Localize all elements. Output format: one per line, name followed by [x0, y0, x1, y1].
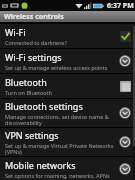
button[interactable]: Bluetooth: [0, 74, 135, 98]
button[interactable]: Open settings: [119, 163, 131, 175]
staticText: Manage connections, set device name & di…: [5, 113, 116, 127]
staticText: Wireless controls: [4, 12, 64, 22]
button[interactable]: Wi-Fi: [0, 24, 135, 48]
staticText: Wi-Fi settings: [5, 51, 62, 63]
staticText: Set up & manage Virtual Private Networks…: [5, 142, 116, 156]
staticText: Connected to darkness?: [5, 39, 67, 46]
button[interactable]: Open settings: [119, 107, 131, 119]
button[interactable]: Wi-Fi settings: [0, 49, 135, 73]
button[interactable]: Toggle off: [120, 81, 131, 92]
button[interactable]: Open settings: [119, 55, 131, 67]
staticText: Turn on Bluetooth: [5, 89, 52, 96]
staticText: VPN settings: [5, 129, 59, 141]
staticText: Set options for roaming, networks, APNs: [5, 172, 110, 179]
staticText: Bluetooth: [5, 76, 47, 88]
staticText: Set up & manage wireless access points: [5, 64, 108, 71]
staticText: Wi-Fi: [5, 26, 26, 38]
button[interactable]: Bluetooth settings: [0, 99, 135, 127]
staticText: Mobile networks: [5, 159, 76, 171]
button[interactable]: Open settings: [119, 136, 131, 148]
button[interactable]: VPN settings: [0, 128, 135, 156]
staticText: Bluetooth settings: [5, 100, 83, 112]
button[interactable]: Mobile networks: [0, 157, 135, 180]
button[interactable]: Toggle on: [120, 31, 131, 42]
staticText: 6:37 PM: [107, 1, 134, 11]
